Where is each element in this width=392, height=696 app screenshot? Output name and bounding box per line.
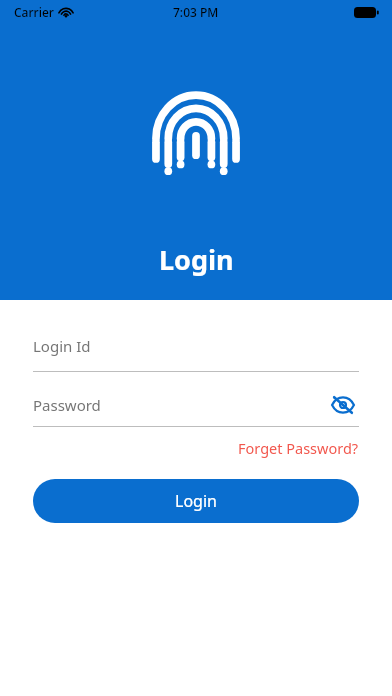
- button[interactable]: Login: [33, 479, 359, 523]
- staticText: 7:03 PM: [173, 4, 219, 20]
- staticText: Password: [33, 395, 327, 415]
- staticText: Login: [159, 241, 234, 278]
- button[interactable]: Forget Password?: [238, 438, 359, 458]
- button[interactable]: Password: [33, 389, 359, 421]
- staticText: Carrier: [14, 4, 54, 20]
- button[interactable]: Login Id: [33, 336, 359, 372]
- staticText: Login: [175, 490, 217, 512]
- button[interactable]: Show password: [327, 389, 359, 421]
- staticText: Login Id: [33, 336, 91, 356]
